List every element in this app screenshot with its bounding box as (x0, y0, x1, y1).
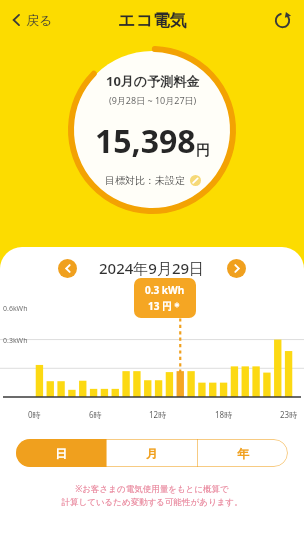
staticText: 23時 (280, 409, 298, 420)
button[interactable]: 目標対比：未設定 (103, 172, 203, 189)
staticText: 10月の予測料金 (106, 72, 200, 90)
staticText: 0.3kWh (3, 336, 28, 346)
staticText: 0.3 kWh (145, 283, 185, 297)
button[interactable]: Next day (227, 259, 246, 278)
staticText: 0.6kWh (3, 304, 28, 314)
staticText: 年 (237, 446, 249, 461)
staticText: 12時 (149, 409, 167, 420)
staticText: エコ電気 (118, 10, 187, 31)
staticText: 13 円＊ (148, 299, 183, 313)
staticText: 日 (55, 446, 67, 461)
button[interactable]: 0.3 kWh (134, 278, 196, 318)
staticText: 月 (146, 446, 158, 461)
button[interactable]: 月 (107, 439, 197, 467)
button[interactable]: Refresh (269, 7, 295, 33)
staticText: 0時 (28, 409, 41, 420)
button[interactable]: 日 (16, 439, 106, 467)
staticText: 15,398 (95, 119, 196, 163)
staticText: 目標対比：未設定 (105, 174, 185, 187)
button[interactable]: 年 (198, 439, 288, 467)
staticText: 18時 (215, 409, 233, 420)
button[interactable]: Previous day (58, 259, 77, 278)
staticText: (9月28日 ~ 10月27日) (109, 94, 197, 106)
staticText: 戻る (26, 12, 53, 28)
staticText: ※お客さまの電気使用量をもとに概算で 計算しているため変動する可能性があります。 (0, 483, 304, 507)
staticText: 6時 (89, 409, 102, 420)
staticText: 円 (196, 142, 210, 160)
button[interactable]: 戻る (6, 8, 59, 32)
staticText: 2024年9月29日 (99, 258, 205, 278)
